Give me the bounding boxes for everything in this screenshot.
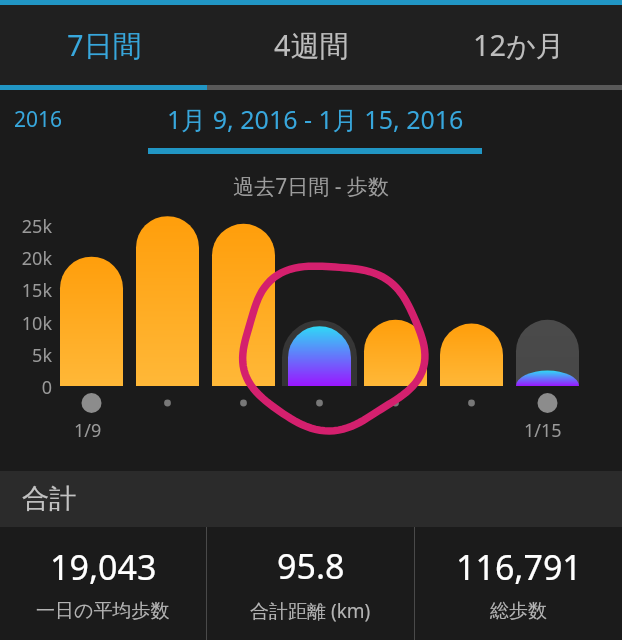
staticText: 20k <box>2 246 52 271</box>
staticText: 25k <box>2 214 52 239</box>
staticText: 1/15 <box>524 418 562 443</box>
staticText: 合計 <box>22 482 76 516</box>
staticText: 5k <box>2 343 52 368</box>
staticText: 116,791 <box>456 544 582 590</box>
button[interactable]: 116,791 <box>415 527 622 640</box>
staticText: 12か月 <box>473 25 565 65</box>
staticText: 7日間 <box>67 25 142 65</box>
button[interactable]: 12か月 <box>415 5 622 85</box>
button[interactable]: 19,043 <box>0 527 206 640</box>
button[interactable]: 2016 <box>14 105 63 134</box>
staticText: 15k <box>2 278 52 303</box>
staticText: 10k <box>2 311 52 336</box>
button[interactable]: 95.8 <box>207 527 414 640</box>
staticText: 4週間 <box>274 25 349 65</box>
staticText: 合計距離 (km) <box>250 598 371 624</box>
staticText: 総歩数 <box>490 599 547 623</box>
staticText: 1/9 <box>74 418 102 443</box>
button[interactable]: 1月 9, 2016 - 1月 15, 2016 <box>167 102 464 136</box>
staticText: 一日の平均歩数 <box>36 599 170 623</box>
staticText: 過去7日間 - 歩数 <box>0 172 622 201</box>
staticText: 95.8 <box>277 543 345 589</box>
button[interactable]: 4週間 <box>208 5 415 85</box>
staticText: 0 <box>2 375 52 400</box>
staticText: 19,043 <box>50 544 157 590</box>
button[interactable]: 7日間 <box>0 5 208 85</box>
